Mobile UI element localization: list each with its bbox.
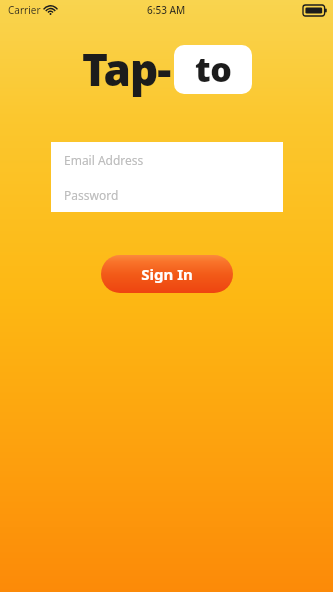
staticText: Password [64, 187, 119, 203]
staticText: Tap- [82, 39, 171, 99]
staticText: Carrier [8, 3, 41, 17]
button[interactable]: Sign In [101, 255, 233, 293]
staticText: to [195, 46, 232, 92]
staticText: 6:53 AM [147, 3, 186, 17]
button[interactable]: Password [51, 177, 283, 212]
staticText: Sign In [141, 264, 193, 284]
staticText: Email Address [64, 152, 144, 168]
button[interactable]: Email Address [51, 142, 283, 177]
